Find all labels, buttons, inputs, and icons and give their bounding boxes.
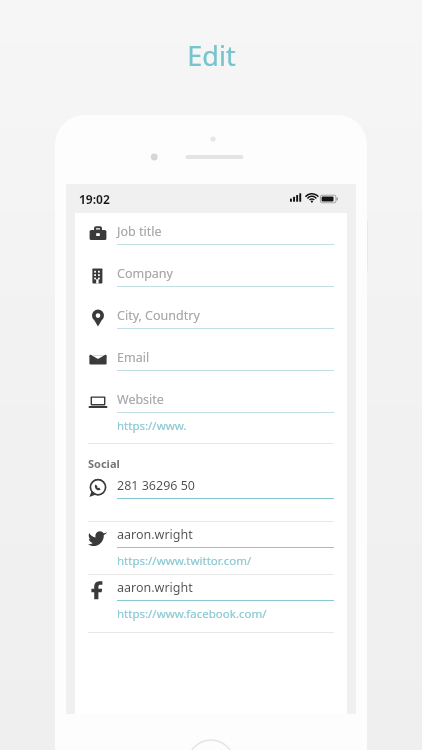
staticText: https://www.facebook.com/ bbox=[117, 606, 267, 622]
staticText: 281 36296 50 bbox=[117, 477, 196, 494]
button[interactable]: Email bbox=[75, 349, 347, 391]
staticText: aaron.wright bbox=[117, 526, 193, 543]
button[interactable]: Job title bbox=[75, 223, 347, 265]
button[interactable]: Website bbox=[75, 391, 347, 438]
staticText: aaron.wright bbox=[117, 579, 193, 596]
staticText: Social bbox=[88, 456, 120, 471]
button[interactable]: Facebook bbox=[75, 579, 347, 626]
other: WhatsApp bbox=[88, 478, 108, 498]
button[interactable]: WhatsApp bbox=[75, 477, 347, 519]
other: Company bbox=[88, 266, 108, 286]
other: Email bbox=[88, 350, 108, 370]
other: City, Country bbox=[88, 308, 108, 328]
button[interactable]: Twitter bbox=[75, 526, 347, 573]
staticText: Edit bbox=[187, 37, 236, 74]
staticText: Website bbox=[117, 391, 164, 408]
staticText: Company bbox=[117, 265, 173, 282]
staticText: Job title bbox=[117, 223, 162, 240]
staticText: City, Coundtry bbox=[117, 307, 200, 324]
other: Facebook bbox=[88, 580, 108, 600]
button[interactable]: City, Country bbox=[75, 307, 347, 349]
staticText: Email bbox=[117, 349, 150, 366]
other: Twitter bbox=[88, 527, 108, 547]
other: Website bbox=[88, 392, 108, 412]
staticText: https://www. bbox=[117, 418, 187, 434]
staticText: https://www.twittor.com/ bbox=[117, 553, 252, 569]
staticText: 19:02 bbox=[79, 191, 110, 207]
other: Job title bbox=[88, 224, 108, 244]
button[interactable]: Company bbox=[75, 265, 347, 307]
